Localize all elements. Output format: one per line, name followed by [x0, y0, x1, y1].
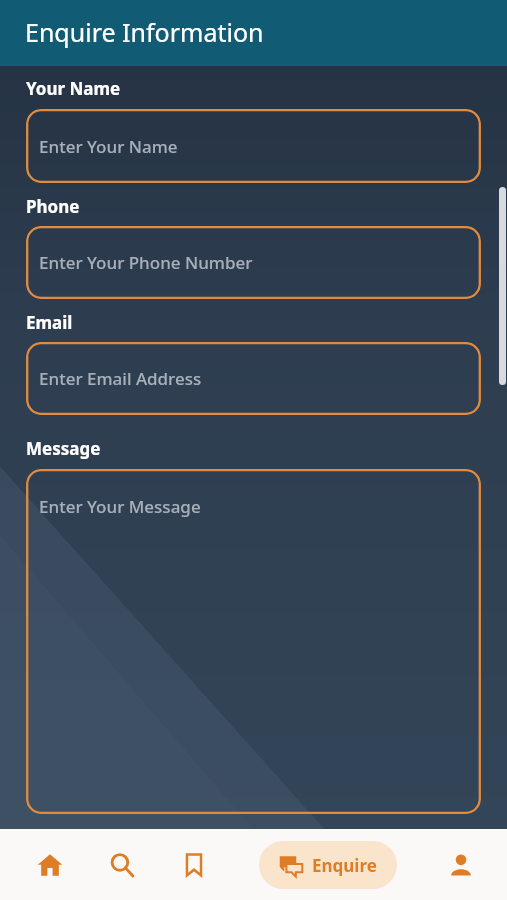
button[interactable]: Search [86, 829, 158, 900]
button[interactable]: Enter Your Name [26, 109, 481, 183]
staticText: Enter Your Name [39, 135, 178, 158]
button[interactable]: Enquire [259, 841, 397, 889]
staticText: Phone [26, 195, 80, 218]
staticText: Email [26, 311, 73, 334]
staticText: Enter Email Address [39, 367, 202, 390]
staticText: Enter Your Phone Number [39, 251, 253, 274]
staticText: Your Name [26, 77, 121, 100]
button[interactable]: Home [14, 829, 86, 900]
button[interactable]: Enter Email Address [26, 342, 481, 415]
button[interactable]: Bookmarks [158, 829, 230, 900]
button[interactable]: Profile [425, 829, 497, 900]
staticText: Enter Your Message [39, 495, 201, 518]
staticText: Enquire Information [25, 15, 264, 49]
staticText: Enquire [312, 854, 377, 877]
staticText: Message [26, 437, 101, 460]
button[interactable]: Enter Your Message [26, 469, 481, 814]
button[interactable]: Enter Your Phone Number [26, 226, 481, 299]
